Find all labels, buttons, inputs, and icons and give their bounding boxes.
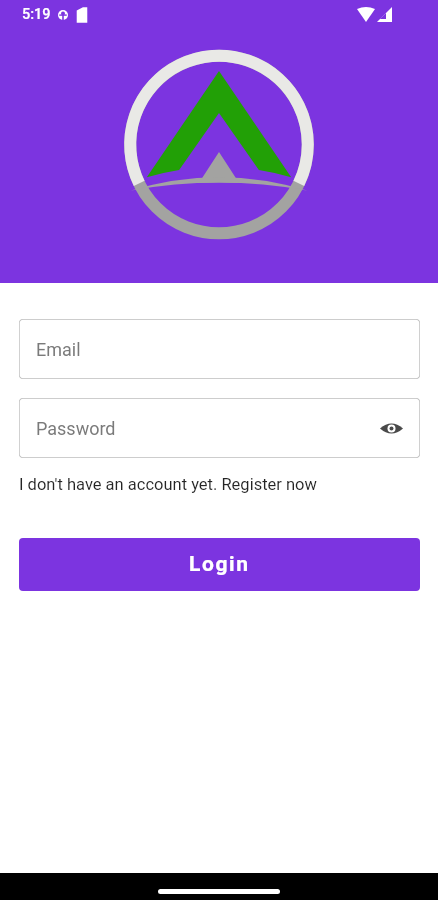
staticText: I don't have an account yet. Register no… — [19, 475, 317, 494]
button[interactable]: I don't have an account yet. Register no… — [19, 475, 317, 494]
staticText: Email — [36, 339, 81, 360]
staticText: 5:19 — [22, 6, 51, 23]
button[interactable]: Show password — [376, 413, 406, 443]
button[interactable]: Password — [19, 398, 420, 458]
button[interactable]: Login — [19, 538, 420, 591]
button[interactable]: Email — [19, 319, 420, 379]
staticText: Password — [36, 418, 116, 439]
staticText: Login — [189, 552, 250, 577]
